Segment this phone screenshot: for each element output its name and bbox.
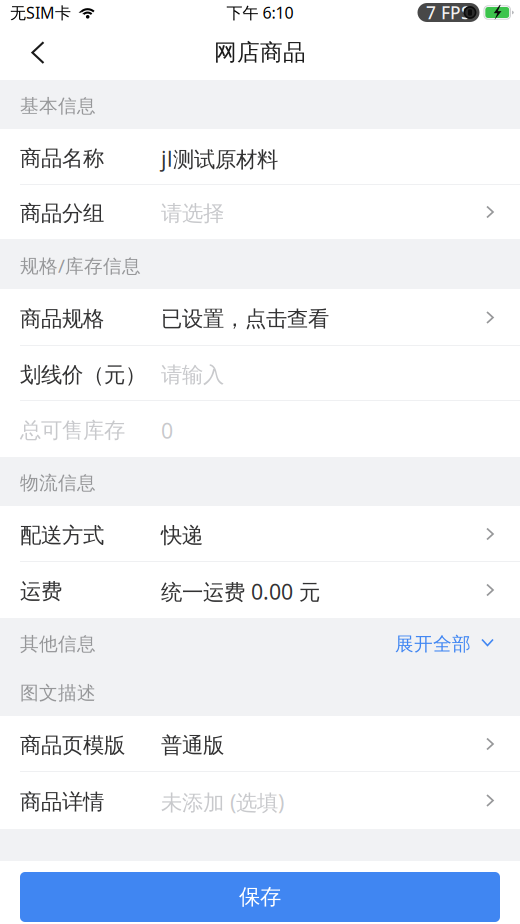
staticText: 图文描述 bbox=[20, 681, 96, 704]
staticText: jl测试原材料 bbox=[161, 144, 278, 173]
staticText: 保存 bbox=[239, 884, 281, 910]
button[interactable]: 配送方式 bbox=[0, 506, 520, 562]
staticText: 总可售库存 bbox=[20, 417, 125, 444]
button[interactable]: 商品规格 bbox=[0, 289, 520, 346]
staticText: 请输入 bbox=[161, 362, 224, 388]
staticText: 未添加 (选填) bbox=[161, 788, 284, 816]
staticText: 其他信息 bbox=[20, 632, 96, 655]
button[interactable]: 运费 bbox=[0, 562, 520, 618]
staticText: 商品名称 bbox=[20, 145, 104, 172]
button[interactable]: 总可售库存 bbox=[0, 401, 520, 457]
staticText: 运费 bbox=[20, 578, 62, 605]
staticText: 网店商品 bbox=[214, 39, 306, 66]
button[interactable]: 商品分组 bbox=[0, 185, 520, 239]
button[interactable]: 商品名称 bbox=[0, 129, 520, 185]
staticText: 规格/库存信息 bbox=[20, 253, 141, 278]
button[interactable]: 商品详情 bbox=[0, 772, 520, 829]
button[interactable]: 划线价（元） bbox=[0, 346, 520, 401]
button[interactable]: 保存 bbox=[20, 872, 500, 922]
staticText: 物流信息 bbox=[20, 471, 96, 494]
staticText: 下午 6:10 bbox=[226, 2, 293, 23]
staticText: 展开全部 bbox=[395, 632, 471, 655]
staticText: 统一运费 0.00 元 bbox=[161, 577, 320, 606]
button[interactable]: 商品页模版 bbox=[0, 716, 520, 772]
staticText: 7 FPS bbox=[426, 1, 471, 24]
staticText: 请选择 bbox=[161, 200, 224, 227]
staticText: 商品分组 bbox=[20, 200, 104, 227]
staticText: 商品详情 bbox=[20, 789, 104, 815]
staticText: 商品页模版 bbox=[20, 732, 125, 759]
button[interactable]: 展开全部 bbox=[387, 618, 502, 667]
staticText: 0 bbox=[161, 416, 173, 445]
staticText: 已设置，点击查看 bbox=[161, 306, 329, 332]
staticText: 快递 bbox=[161, 522, 203, 549]
staticText: 配送方式 bbox=[20, 522, 104, 549]
button[interactable]: 返回 bbox=[10, 25, 66, 80]
staticText: 无SIM卡 bbox=[10, 2, 71, 23]
staticText: 划线价（元） bbox=[20, 362, 146, 388]
staticText: 商品规格 bbox=[20, 306, 104, 332]
staticText: 基本信息 bbox=[20, 94, 96, 117]
staticText: 普通版 bbox=[161, 732, 224, 759]
